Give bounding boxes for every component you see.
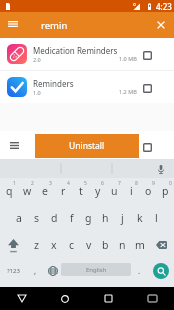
button[interactable]: Uninstall — [35, 134, 139, 158]
button[interactable]: k — [131, 205, 148, 232]
button[interactable]: Recent apps — [86, 287, 130, 310]
button[interactable]: , — [27, 259, 44, 287]
staticText: 1.2 MB — [119, 88, 137, 95]
staticText: a — [16, 211, 22, 225]
staticText: m — [135, 238, 145, 252]
button[interactable]: Back — [0, 287, 43, 310]
staticText: v — [86, 238, 92, 252]
button[interactable]: Close search — [147, 12, 173, 38]
staticText: o — [145, 184, 152, 198]
button[interactable]: Sort — [0, 131, 28, 159]
button[interactable]: 9 — [140, 178, 157, 205]
staticText: 4:23 — [156, 1, 172, 12]
staticText: English — [86, 266, 107, 274]
button[interactable]: c — [63, 232, 80, 259]
staticText: 1.0 MB — [119, 55, 137, 62]
staticText: 8 — [135, 180, 138, 187]
button[interactable]: 0 — [157, 178, 174, 205]
staticText: , — [34, 265, 37, 276]
staticText: j — [121, 211, 124, 225]
staticText: . — [138, 265, 141, 276]
staticText: ?123 — [7, 267, 20, 275]
button[interactable]: x — [45, 232, 63, 259]
staticText: i — [130, 184, 133, 198]
staticText: 1.0 — [33, 89, 41, 96]
staticText: g — [85, 211, 92, 225]
button[interactable]: Select all — [139, 139, 155, 155]
button[interactable]: 8 — [123, 178, 140, 205]
staticText: 3 — [49, 180, 52, 187]
button[interactable]: Home — [43, 287, 86, 310]
button[interactable]: 7 — [106, 178, 123, 205]
staticText: p — [162, 184, 169, 198]
button[interactable]: Medication Reminders — [0, 38, 174, 70]
button[interactable]: Switch keyboard — [130, 287, 174, 310]
button[interactable]: z — [27, 232, 45, 259]
staticText: 2.0 — [33, 56, 41, 63]
staticText: x — [51, 238, 57, 252]
button[interactable]: g — [80, 205, 97, 232]
button[interactable]: 5 — [72, 178, 89, 205]
button[interactable]: 4 — [54, 178, 72, 205]
staticText: e — [42, 184, 48, 198]
staticText: c — [69, 238, 75, 252]
staticText: Uninstall — [69, 140, 105, 152]
staticText: z — [34, 238, 39, 252]
button[interactable]: 6 — [89, 178, 106, 205]
button[interactable]: n — [114, 232, 131, 259]
button[interactable]: Shift — [0, 232, 27, 259]
button[interactable]: b — [97, 232, 114, 259]
button[interactable]: ?123 — [0, 259, 27, 287]
staticText: b — [102, 238, 109, 252]
staticText: remin — [41, 19, 68, 32]
button[interactable]: m — [131, 232, 148, 259]
staticText: l — [155, 211, 158, 225]
button[interactable]: English — [61, 259, 131, 287]
staticText: q — [6, 184, 13, 198]
button[interactable]: Voice input — [156, 164, 166, 174]
staticText: 6 — [101, 180, 104, 187]
staticText: 2 — [31, 180, 34, 187]
button[interactable]: h — [97, 205, 114, 232]
button[interactable]: a — [10, 205, 28, 232]
button[interactable]: 1 — [0, 178, 18, 205]
button[interactable]: . — [131, 259, 148, 287]
staticText: 4 — [67, 180, 70, 187]
button[interactable]: d — [46, 205, 63, 232]
button[interactable]: Search — [148, 259, 174, 287]
button[interactable]: f — [63, 205, 80, 232]
staticText: f — [70, 211, 74, 225]
button[interactable]: 2 — [18, 178, 36, 205]
button[interactable]: Open navigation menu — [0, 12, 26, 38]
staticText: k — [137, 211, 143, 225]
staticText: d — [51, 211, 58, 225]
button[interactable]: Select Reminders — [139, 80, 155, 96]
staticText: n — [119, 238, 126, 252]
button[interactable]: s — [28, 205, 46, 232]
button[interactable]: Select Medication Reminders — [139, 47, 155, 63]
staticText: Medication Reminders — [33, 45, 118, 56]
staticText: u — [111, 184, 118, 198]
button[interactable]: 3 — [36, 178, 54, 205]
staticText: Reminders — [33, 78, 74, 89]
staticText: 7 — [118, 180, 121, 187]
staticText: 9 — [152, 180, 155, 187]
staticText: r — [61, 184, 66, 198]
button[interactable]: Reminders — [0, 71, 174, 103]
staticText: t — [79, 184, 83, 198]
button[interactable]: j — [114, 205, 131, 232]
staticText: w — [23, 184, 32, 198]
staticText: 1 — [13, 180, 16, 187]
button[interactable]: Backspace — [148, 232, 174, 259]
button[interactable]: l — [148, 205, 165, 232]
staticText: h — [102, 211, 109, 225]
button[interactable]: v — [80, 232, 97, 259]
button[interactable]: Change language — [44, 257, 61, 285]
staticText: 5 — [84, 180, 87, 187]
staticText: s — [34, 211, 40, 225]
staticText: y — [95, 184, 101, 198]
staticText: 0 — [169, 180, 172, 187]
